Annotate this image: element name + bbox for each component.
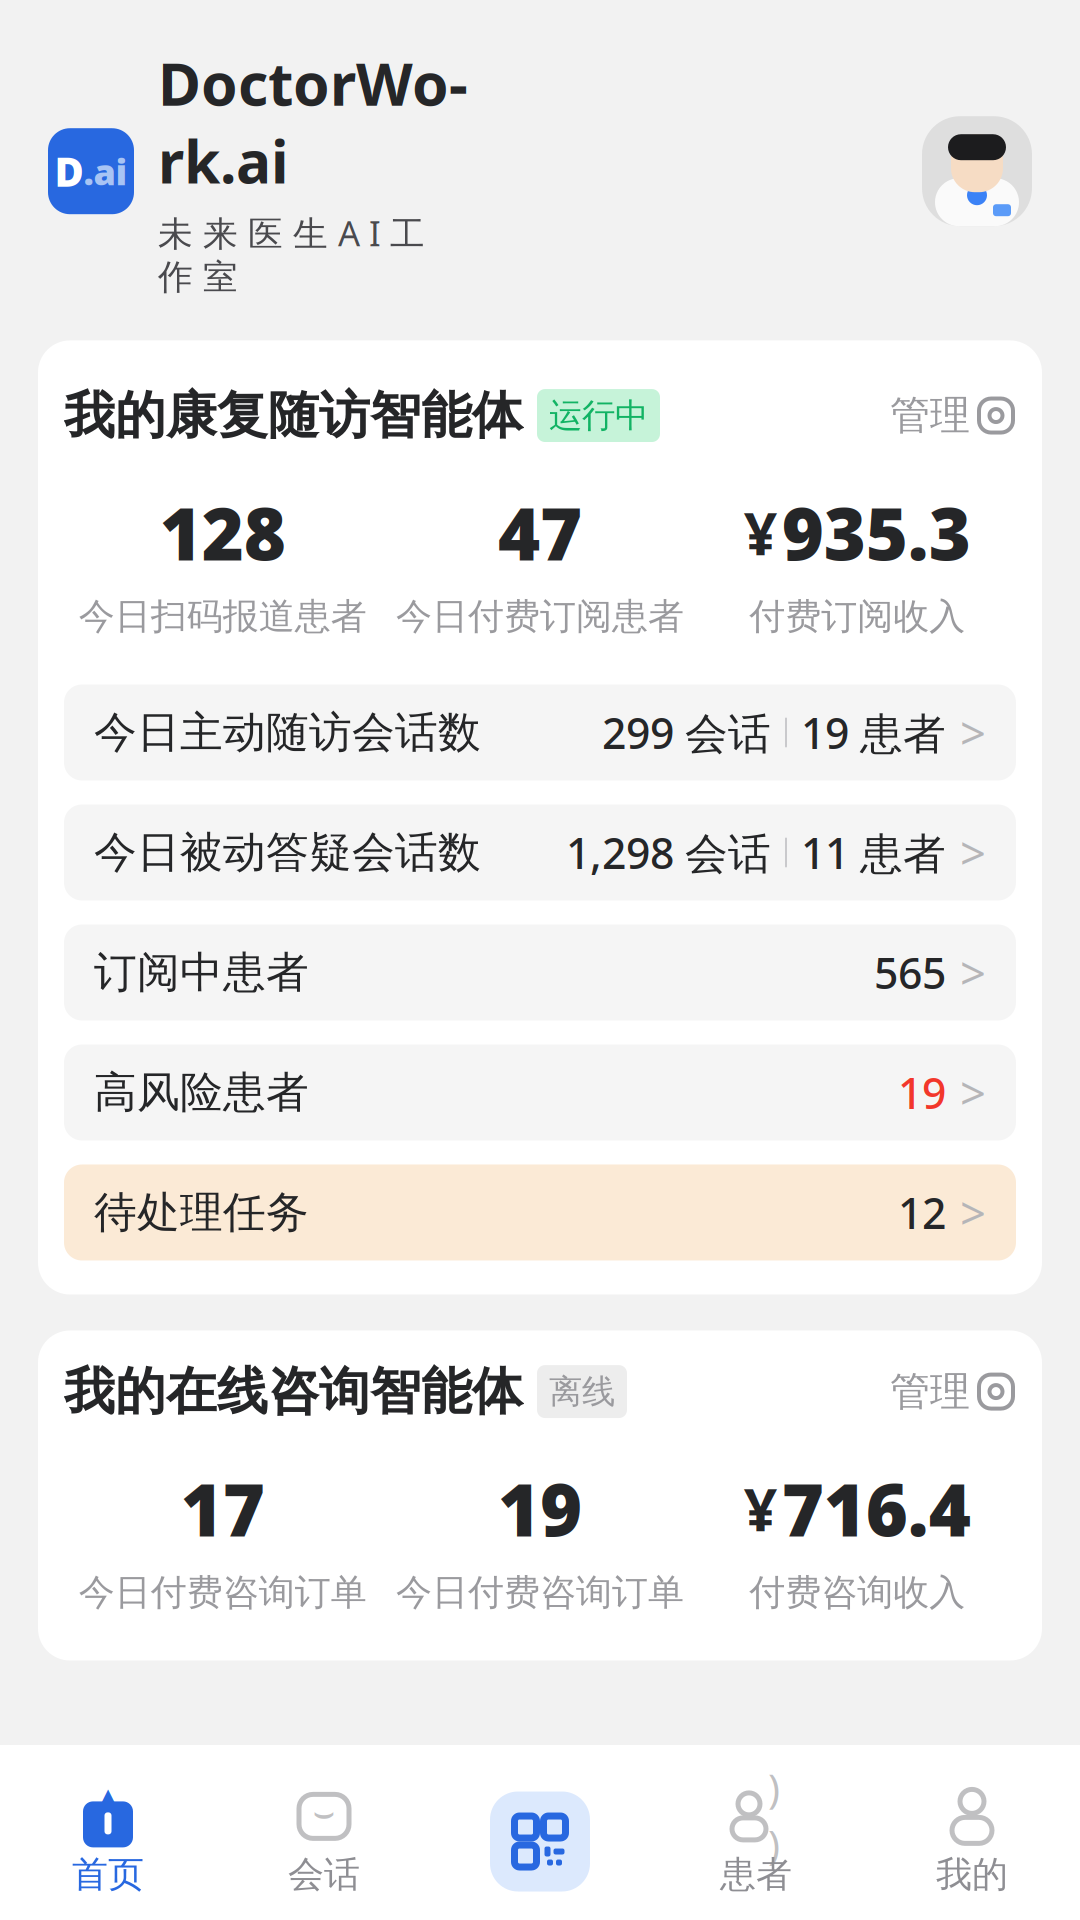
- staticText: 高风险患者: [94, 1066, 309, 1119]
- staticText: >: [960, 942, 986, 1003]
- staticText: 会话: [288, 1852, 360, 1897]
- button[interactable]: 管理: [890, 391, 1016, 440]
- staticText: 11 患者: [801, 824, 946, 881]
- staticText: ▲: [87, 1775, 128, 1836]
- staticText: 565: [874, 944, 946, 1001]
- staticText: 管理: [890, 391, 970, 440]
- staticText: >: [960, 1182, 986, 1243]
- staticText: 716.4: [782, 1461, 971, 1556]
- staticText: 19: [498, 1461, 582, 1556]
- staticText: ): [768, 1818, 780, 1871]
- staticText: 47: [498, 485, 582, 580]
- staticText: 935.3: [782, 485, 971, 580]
- staticText: ): [768, 1762, 780, 1815]
- button[interactable]: 待处理任务: [64, 1164, 1016, 1260]
- staticText: 患者: [720, 1852, 792, 1897]
- staticText: 128: [160, 485, 286, 580]
- button[interactable]: ▲: [0, 1786, 216, 1897]
- staticText: 我的康复随访智能体: [64, 384, 523, 447]
- staticText: ⌣: [312, 1796, 335, 1830]
- button[interactable]: 今日主动随访会话数: [64, 684, 1016, 780]
- staticText: 我的在线咨询智能体: [64, 1360, 523, 1423]
- staticText: 今日主动随访会话数: [94, 706, 481, 759]
- staticText: 未 来 医 生 A I 工 作 室: [158, 210, 425, 298]
- button[interactable]: 扫码: [432, 1791, 648, 1891]
- button[interactable]: ⌣: [216, 1786, 432, 1897]
- staticText: 管理: [890, 1367, 970, 1416]
- staticText: 1,298 会话: [566, 824, 771, 881]
- button[interactable]: 高风险患者: [64, 1044, 1016, 1140]
- button[interactable]: 我的: [864, 1786, 1080, 1897]
- button[interactable]: 订阅中患者: [64, 924, 1016, 1020]
- staticText: ¥: [744, 1469, 778, 1547]
- staticText: 离线: [549, 1371, 615, 1412]
- staticText: 付费咨询收入: [749, 1570, 965, 1614]
- staticText: 17: [181, 1461, 265, 1556]
- staticText: 今日付费咨询订单: [396, 1570, 684, 1614]
- staticText: 今日被动答疑会话数: [94, 826, 481, 879]
- staticText: 待处理任务: [94, 1186, 309, 1239]
- button[interactable]: 个人头像: [922, 116, 1032, 226]
- button[interactable]: ): [648, 1786, 864, 1897]
- staticText: 19: [898, 1064, 946, 1121]
- staticText: 今日付费订阅患者: [396, 594, 684, 638]
- staticText: .ai: [83, 147, 127, 195]
- staticText: 付费订阅收入: [749, 594, 965, 638]
- button[interactable]: 管理: [890, 1367, 1016, 1416]
- staticText: 首页: [72, 1852, 144, 1897]
- staticText: 19 患者: [801, 704, 946, 761]
- staticText: 运行中: [549, 395, 648, 436]
- staticText: DoctorWork.ai: [158, 44, 468, 200]
- staticText: 今日扫码报道患者: [79, 594, 367, 638]
- staticText: D: [54, 145, 83, 198]
- staticText: >: [960, 1062, 986, 1123]
- button[interactable]: D: [48, 44, 485, 298]
- staticText: 今日付费咨询订单: [79, 1570, 367, 1614]
- staticText: 299 会话: [602, 704, 771, 761]
- staticText: ¥: [744, 493, 778, 571]
- staticText: >: [960, 702, 986, 763]
- staticText: 12: [898, 1184, 946, 1241]
- staticText: 我的: [936, 1852, 1008, 1897]
- button[interactable]: 今日被动答疑会话数: [64, 804, 1016, 900]
- staticText: >: [960, 822, 986, 883]
- staticText: 订阅中患者: [94, 946, 309, 999]
